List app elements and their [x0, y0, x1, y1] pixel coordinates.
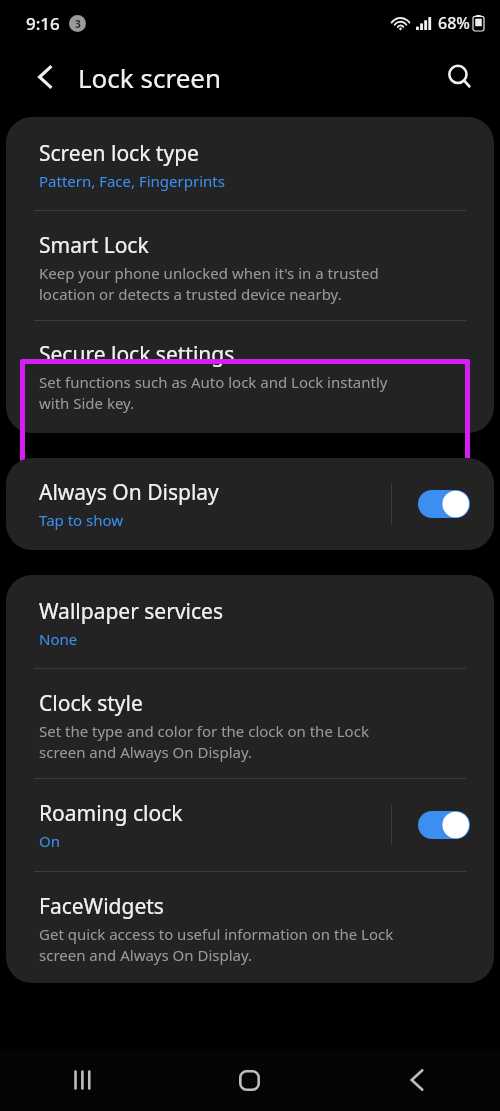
button[interactable]: Roaming clock [6, 779, 494, 871]
staticText: Clock style [39, 689, 143, 718]
staticText: Roaming clock [39, 799, 183, 828]
staticText: Keep your phone unlocked when it's in a … [39, 263, 379, 305]
button[interactable]: Recents [0, 1049, 166, 1111]
staticText: Screen lock type [39, 139, 199, 168]
button[interactable]: Back [22, 54, 68, 100]
button[interactable]: Toggle Always On Display [414, 486, 474, 522]
button[interactable]: Wallpaper services [6, 575, 494, 668]
staticText: 9:16 [26, 12, 60, 35]
staticText: Set the type and color for the clock on … [39, 721, 369, 763]
staticText: Lock screen [78, 60, 222, 95]
staticText: 3 [75, 17, 81, 31]
button[interactable]: Secure lock settings [6, 321, 494, 433]
staticText: None [39, 629, 78, 649]
staticText: Always On Display [39, 478, 219, 507]
staticText: On [39, 831, 60, 851]
button[interactable]: Clock style [6, 669, 494, 778]
button[interactable]: Toggle Roaming clock [414, 807, 474, 843]
staticText: FaceWidgets [39, 892, 164, 921]
staticText: Set functions such as Auto lock and Lock… [39, 372, 388, 414]
staticText: Get quick access to useful information o… [39, 924, 394, 966]
staticText: Smart Lock [39, 231, 149, 260]
button[interactable]: FaceWidgets [6, 872, 494, 983]
button[interactable]: Back [333, 1049, 500, 1111]
button[interactable]: Smart Lock [6, 211, 494, 320]
staticText: Tap to show [39, 510, 124, 530]
button[interactable]: Search [436, 53, 484, 101]
button[interactable]: Home [166, 1049, 333, 1111]
staticText: Secure lock settings [39, 340, 235, 369]
staticText: Pattern, Face, Fingerprints [39, 171, 225, 191]
staticText: 68% [438, 12, 470, 34]
staticText: Wallpaper services [39, 597, 223, 626]
button[interactable]: Screen lock type [6, 117, 494, 210]
button[interactable]: Always On Display [6, 458, 494, 550]
